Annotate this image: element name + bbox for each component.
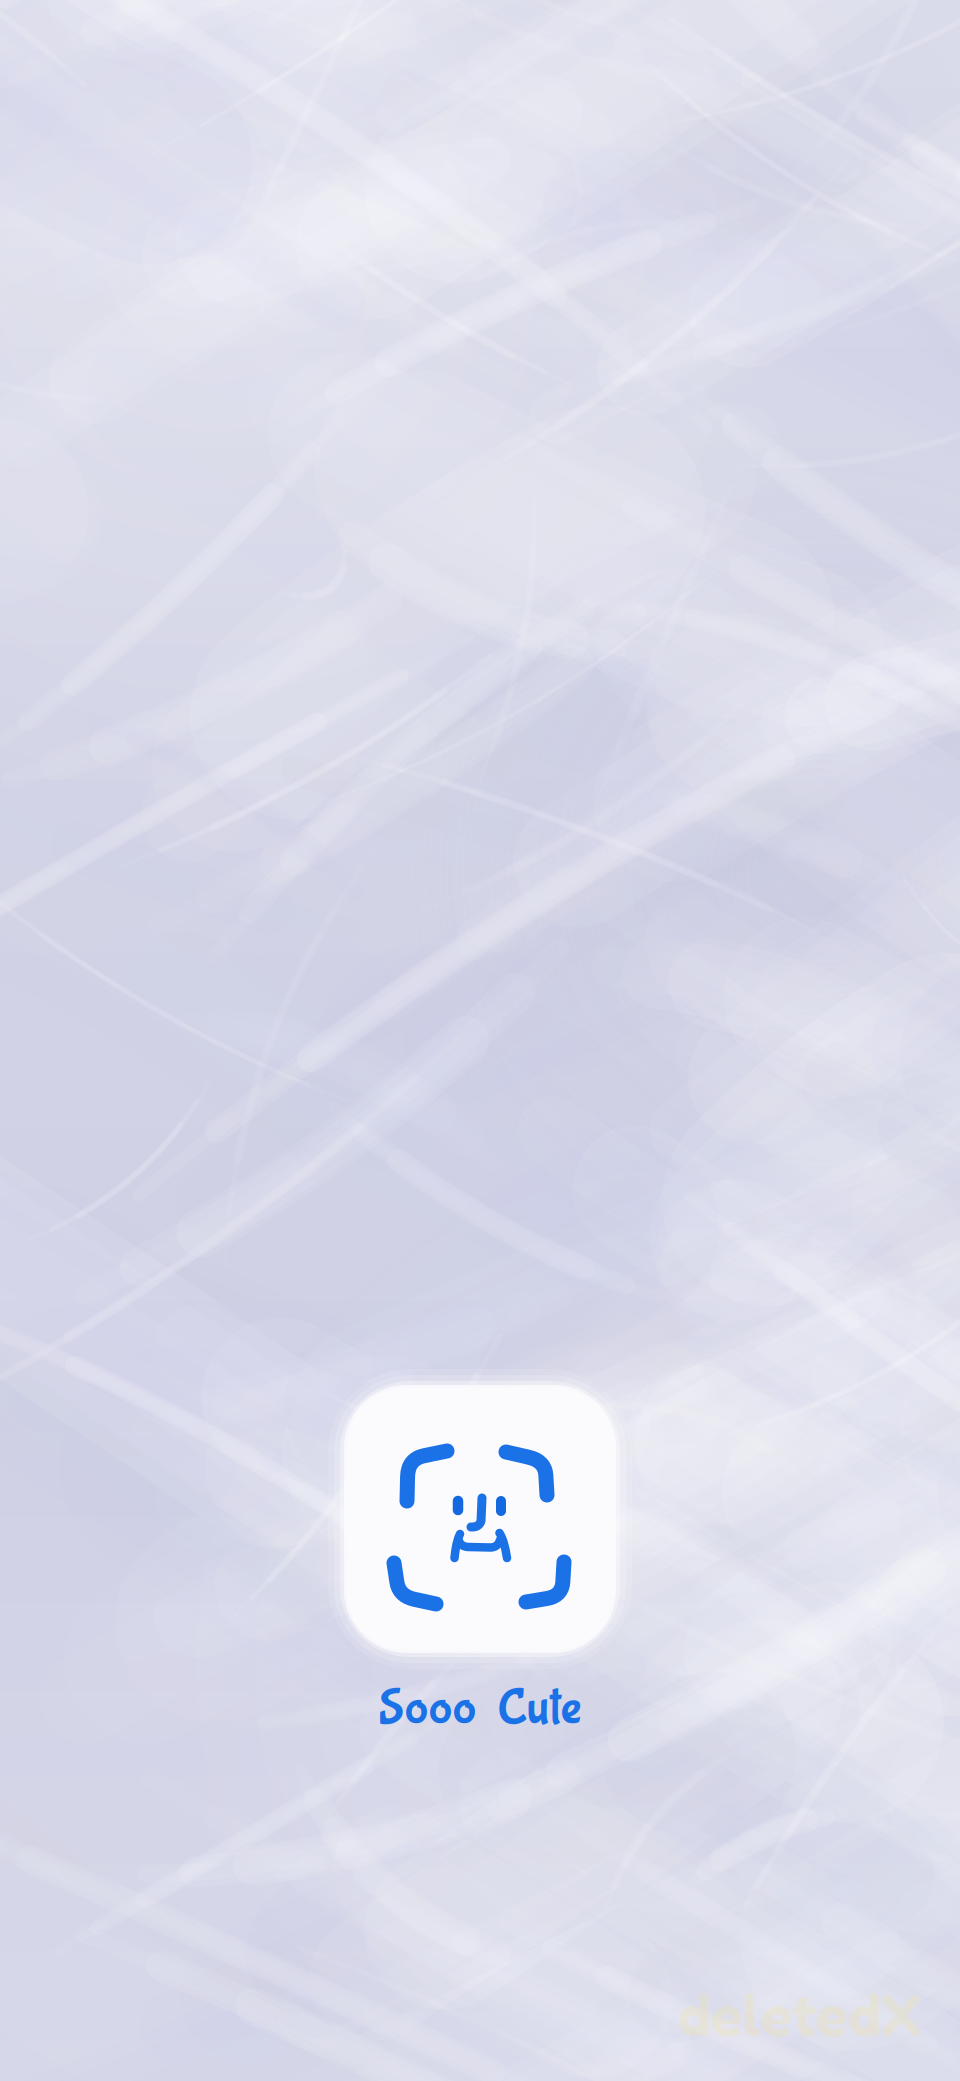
button[interactable]: Sooo Cute [328,1369,632,1669]
button[interactable]: Sooo [290,1679,670,1739]
staticText: Cute [497,1680,581,1738]
staticText: deletedX [678,1978,922,2049]
staticText: Sooo [378,1680,476,1738]
